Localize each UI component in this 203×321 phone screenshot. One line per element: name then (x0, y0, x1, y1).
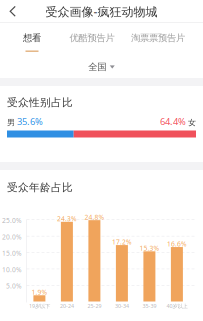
staticText: 5.0% (6, 282, 22, 290)
staticText: 10.0% (2, 265, 22, 274)
staticText: 35-39 (142, 302, 156, 310)
button[interactable]: 返回 (0, 0, 26, 23)
staticText: 16.6% (167, 240, 187, 248)
staticText: 64.4% (160, 115, 188, 127)
staticText: 17.2% (112, 238, 132, 246)
staticText: 24.3% (57, 214, 77, 223)
staticText: 优酷预告片 (69, 32, 114, 44)
staticText: 受众性别占比 (7, 96, 73, 109)
staticText: 35.6% (15, 115, 43, 127)
staticText: 20-24 (60, 302, 74, 310)
staticText: 女 (188, 118, 196, 127)
staticText: 20.0% (2, 232, 22, 241)
button[interactable]: 优酷预告片 (64, 23, 120, 56)
button[interactable]: 淘票票预告片 (130, 23, 186, 56)
staticText: 24.8% (84, 213, 104, 222)
staticText: 25-29 (87, 302, 101, 310)
button[interactable]: 全国 (0, 56, 203, 78)
staticText: 15.0% (2, 249, 22, 258)
staticText: 受众年龄占比 (7, 181, 73, 194)
staticText: 全国 (88, 61, 106, 73)
staticText: 想看 (23, 32, 41, 44)
staticText: 男 (7, 118, 15, 127)
staticText: 30-34 (115, 302, 129, 310)
staticText: 40岁以上 (166, 302, 187, 310)
staticText: 25.0% (2, 216, 22, 225)
staticText: 19岁以下 (29, 302, 50, 310)
staticText: 1.9% (31, 288, 47, 297)
button[interactable]: 想看 (4, 23, 60, 56)
staticText: 15.3% (139, 244, 159, 253)
staticText: 淘票票预告片 (131, 32, 185, 44)
staticText: 受众画像-疯狂动物城 (45, 3, 157, 19)
